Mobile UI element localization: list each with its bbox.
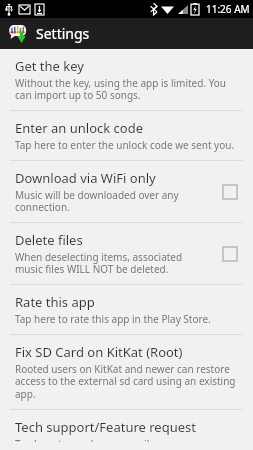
button[interactable]: Toggle Delete files — [217, 241, 243, 267]
staticText: Tech support/Feature request — [15, 418, 196, 436]
staticText: Tap here to enter the unlock code we sen… — [15, 138, 235, 152]
button[interactable]: Tech support/Feature request — [0, 410, 253, 450]
staticText: Fix SD Card on KitKat (Root) — [15, 343, 183, 361]
staticText: 11:26 AM — [206, 2, 250, 16]
button[interactable]: Get the key — [0, 49, 253, 110]
staticText: Tap here to rate this app in the Play St… — [15, 312, 211, 326]
staticText: Enter an unlock code — [15, 119, 144, 137]
staticText: Rooted users on KitKat and newer can res… — [15, 362, 243, 401]
button[interactable]: Rate this app — [0, 285, 253, 334]
button[interactable]: Fix SD Card on KitKat (Root) — [0, 335, 253, 409]
button[interactable]: Delete files — [0, 223, 253, 284]
staticText: Rate this app — [15, 293, 95, 311]
button[interactable]: Enter an unlock code — [0, 111, 253, 160]
staticText: Settings — [36, 24, 90, 43]
staticText: Delete files — [15, 231, 83, 249]
staticText: Download via WiFi only — [15, 169, 156, 187]
button[interactable]: Download via WiFi only — [0, 161, 253, 222]
staticText: Get the key — [15, 57, 84, 75]
staticText: When deselecting items, associated music… — [15, 250, 207, 276]
staticText: Without the key, using the app is limite… — [15, 76, 243, 102]
staticText: Music will be downloaded over any connec… — [15, 188, 207, 214]
button[interactable]: Toggle Download via WiFi only — [217, 179, 243, 205]
staticText: Tap here to send us an email. — [15, 437, 153, 442]
